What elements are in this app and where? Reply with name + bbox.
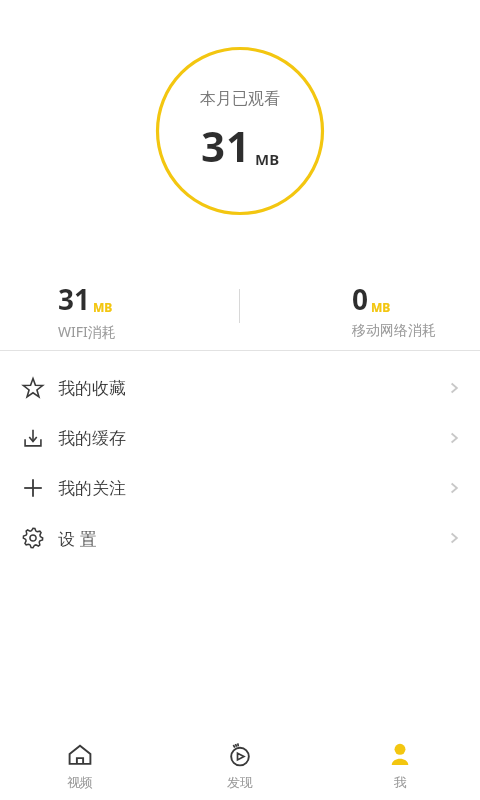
- staticText: MB: [371, 299, 391, 315]
- staticText: 我的关注: [58, 478, 126, 499]
- staticText: WIFI消耗: [58, 322, 116, 340]
- staticText: 31: [58, 280, 91, 318]
- button[interactable]: 设 置: [0, 513, 480, 563]
- button[interactable]: 我的关注: [0, 463, 480, 513]
- staticText: MB: [255, 149, 280, 169]
- button[interactable]: 视频: [0, 732, 160, 800]
- button[interactable]: 我: [320, 732, 480, 800]
- staticText: 设 置: [58, 527, 97, 550]
- button[interactable]: 我的缓存: [0, 413, 480, 463]
- staticText: 0: [352, 280, 369, 318]
- staticText: 本月已观看: [200, 89, 280, 109]
- staticText: 我: [394, 774, 407, 790]
- staticText: 我的缓存: [58, 428, 126, 449]
- staticText: 我的收藏: [58, 378, 126, 399]
- staticText: 移动网络消耗: [352, 322, 436, 340]
- staticText: MB: [93, 299, 113, 315]
- button[interactable]: 我的收藏: [0, 363, 480, 413]
- button[interactable]: 发现: [160, 732, 320, 800]
- staticText: 视频: [67, 774, 93, 790]
- staticText: 31: [201, 117, 252, 174]
- staticText: 发现: [227, 774, 253, 790]
